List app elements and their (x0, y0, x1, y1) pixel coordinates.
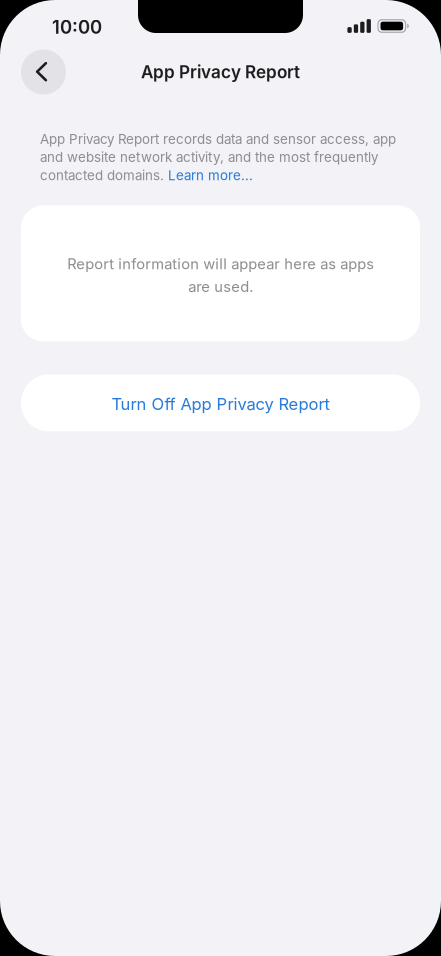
staticText: Turn Off App Privacy Report (111, 394, 329, 414)
button[interactable]: Turn Off App Privacy Report (21, 374, 420, 431)
staticText: App Privacy Report records data and sens… (40, 131, 396, 183)
button[interactable]: Back (21, 51, 66, 96)
staticText: 10:00 (52, 16, 102, 38)
staticText: App Privacy Report (141, 62, 300, 82)
staticText: Report information will appear here as a… (67, 255, 374, 296)
